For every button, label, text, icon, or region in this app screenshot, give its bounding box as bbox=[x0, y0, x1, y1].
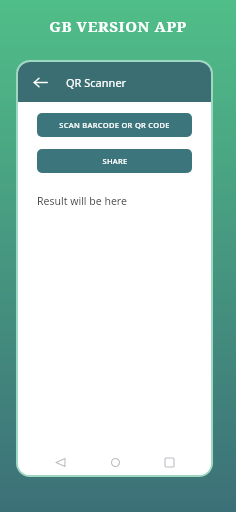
staticText: QR Scanner bbox=[66, 75, 127, 90]
button[interactable]: SHARE bbox=[37, 149, 192, 173]
staticText: SHARE bbox=[102, 156, 128, 166]
staticText: Result will be here bbox=[37, 194, 127, 208]
button[interactable]: Back bbox=[47, 449, 73, 475]
button[interactable]: Home bbox=[102, 449, 128, 475]
button[interactable]: SCAN BARCODE OR QR CODE bbox=[37, 113, 192, 137]
button[interactable]: Back bbox=[26, 68, 54, 96]
button[interactable]: Recent apps bbox=[156, 449, 182, 475]
staticText: GB VERSION APP bbox=[49, 16, 187, 36]
staticText: SCAN BARCODE OR QR CODE bbox=[59, 120, 170, 130]
